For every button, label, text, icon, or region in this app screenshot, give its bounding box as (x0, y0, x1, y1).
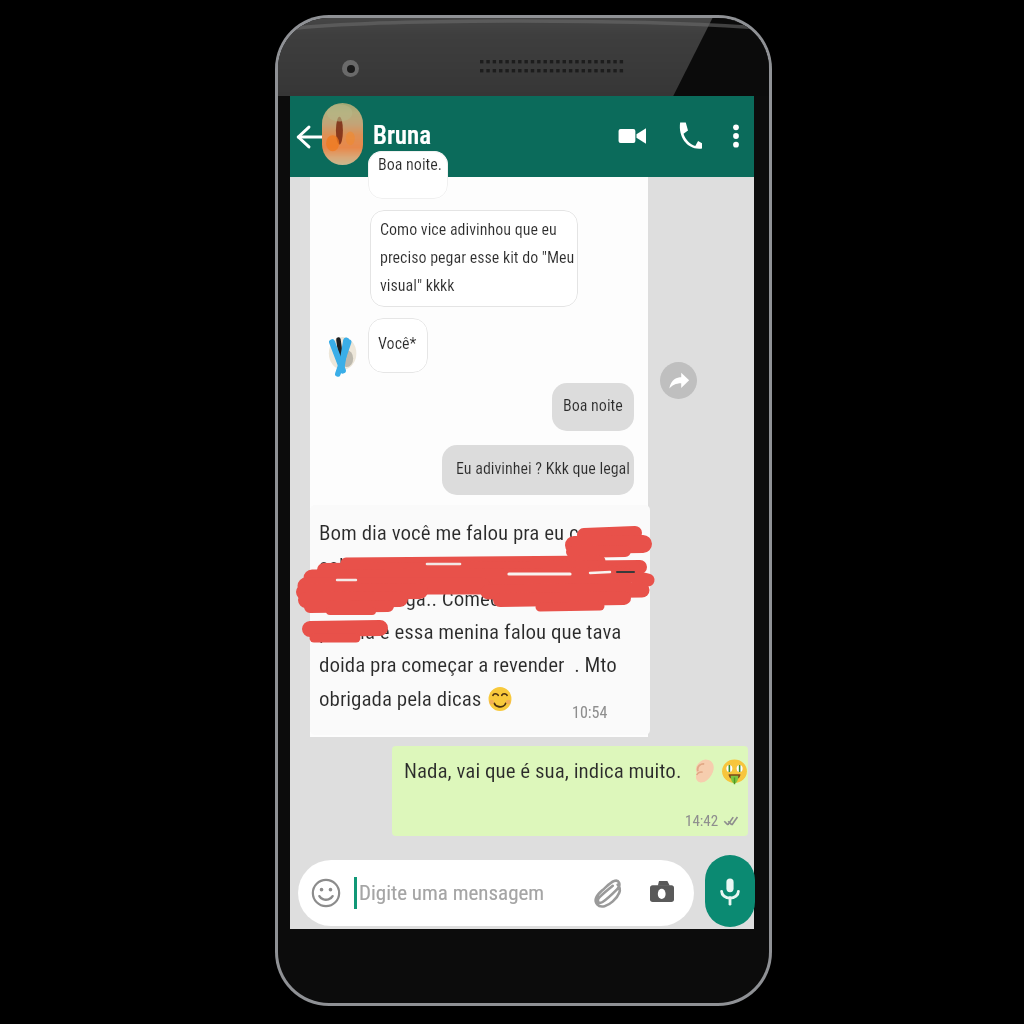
button[interactable]: Contact photo (322, 103, 363, 165)
staticText: Você* (378, 334, 417, 353)
staticText: Boa noite. (378, 155, 443, 174)
button[interactable]: Você* (368, 318, 428, 373)
button[interactable]: Back (292, 113, 328, 161)
staticText: Como vice adivinhou que eu (380, 220, 557, 239)
button[interactable]: Message input (298, 860, 694, 926)
staticText: sobre o kit de lançamento da (319, 554, 564, 579)
button[interactable]: Boa noite (552, 383, 634, 431)
staticText: preciso pegar esse kit do "Meu (380, 248, 575, 267)
staticText: Digite uma mensagem (359, 881, 545, 906)
staticText: visual" kkkk (380, 276, 455, 295)
staticText: Eu adivinhei ? Kkk que legal (456, 459, 630, 478)
staticText: doida pra começar a revender . Mto (319, 653, 617, 678)
button[interactable]: Forward (660, 362, 697, 399)
button[interactable]: Voice call (666, 111, 710, 161)
button[interactable]: Eu adivinhei ? Kkk que legal (442, 445, 634, 495)
button[interactable]: Nada, vai que é sua, indica muito. (392, 746, 748, 836)
staticText: pra ela e essa menina falou que tava (319, 620, 622, 645)
staticText: Bom dia você me falou pra eu c (319, 521, 579, 546)
staticText: 14:42 (685, 812, 719, 830)
button[interactable]: More options (717, 111, 755, 161)
staticText: minha amiga.. Comecei a conta (319, 587, 581, 612)
staticText: 10:54 (572, 703, 608, 722)
button[interactable]: Camera (642, 873, 682, 913)
staticText: Boa noite (563, 396, 623, 415)
staticText: obrigada pela dicas (319, 687, 487, 712)
staticText: Bruna (373, 121, 432, 150)
button[interactable]: Record voice message (705, 855, 755, 927)
button[interactable]: Attach (588, 873, 628, 913)
button[interactable]: Como vice adivinhou que eu (370, 210, 578, 307)
staticText: Nada, vai que é sua, indica muito. (404, 759, 682, 784)
button[interactable]: Bom dia você me falou pra eu c (310, 505, 650, 735)
button[interactable]: Video call (610, 111, 654, 161)
